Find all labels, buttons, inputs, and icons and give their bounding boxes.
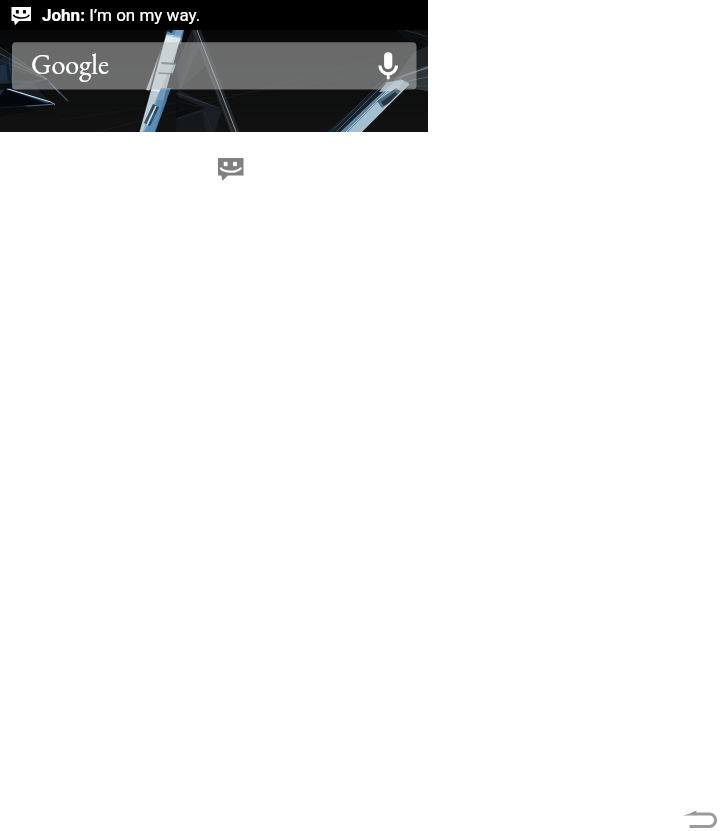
staticText: Google — [31, 46, 109, 83]
button[interactable]: Messaging — [218, 158, 244, 181]
button[interactable]: Back — [683, 808, 717, 829]
staticText: John: I’m on my way. — [42, 5, 201, 25]
